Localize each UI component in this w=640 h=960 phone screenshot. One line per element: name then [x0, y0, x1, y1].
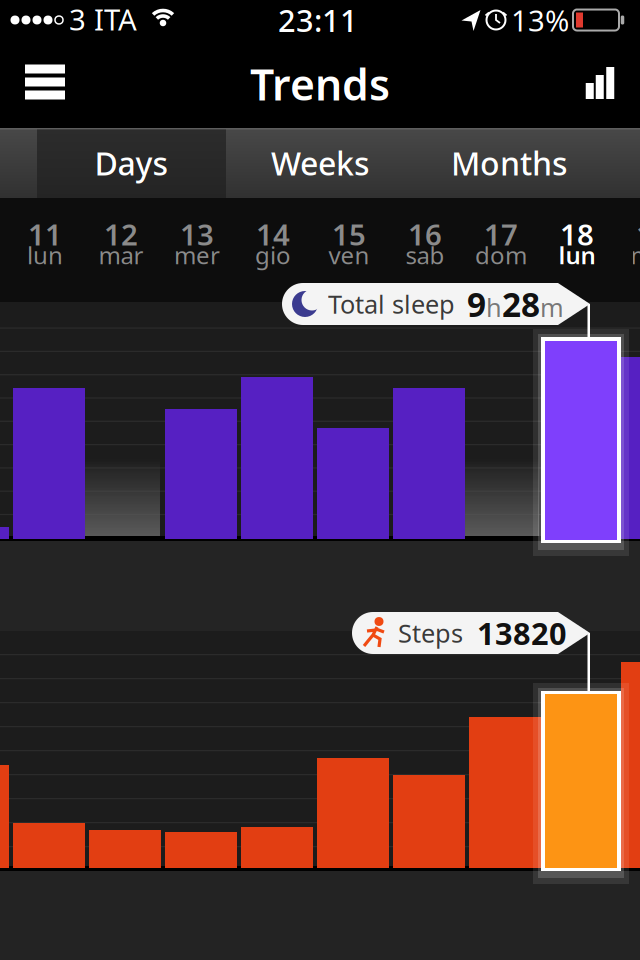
staticText: Total sleep	[328, 287, 455, 321]
staticText: Months	[451, 142, 568, 184]
staticText: h	[486, 290, 502, 324]
button[interactable]: Days	[37, 128, 226, 198]
staticText: 28	[502, 282, 540, 326]
staticText: 12	[104, 214, 138, 253]
button[interactable]: Menu	[25, 64, 65, 99]
staticText: mar	[630, 239, 640, 271]
staticText: Days	[94, 142, 168, 184]
staticText: 18	[560, 214, 594, 253]
button[interactable]: 11	[7, 208, 83, 278]
staticText: 23:11	[278, 0, 358, 40]
staticText: 13%	[511, 0, 569, 39]
staticText: 16	[408, 214, 442, 253]
staticText: m	[540, 290, 564, 324]
button[interactable]: 16	[387, 208, 463, 278]
staticText: 3 ITA	[69, 0, 137, 38]
button[interactable]: 17	[463, 208, 539, 278]
staticText: dom	[475, 239, 527, 271]
staticText: 13	[180, 214, 214, 253]
staticText: 9	[467, 282, 486, 326]
staticText: mar	[98, 239, 143, 271]
button[interactable]: 18	[539, 208, 615, 278]
staticText: sab	[405, 239, 444, 271]
staticText: 17	[484, 214, 518, 253]
staticText: ven	[328, 239, 369, 271]
staticText: lun	[558, 239, 595, 271]
button[interactable]: 12	[83, 208, 159, 278]
staticText: gio	[255, 239, 291, 271]
staticText: Trends	[250, 56, 390, 112]
staticText: 15	[332, 214, 366, 253]
staticText: 11	[28, 214, 62, 253]
button[interactable]: Weeks	[226, 128, 415, 198]
button[interactable]: Charts	[586, 67, 614, 99]
button[interactable]: 15	[311, 208, 387, 278]
staticText: 13820	[477, 613, 567, 653]
button[interactable]: 19	[615, 208, 640, 278]
staticText: 14	[256, 214, 290, 253]
staticText: lun	[27, 239, 63, 271]
staticText: 19	[636, 214, 640, 253]
button[interactable]: 14	[235, 208, 311, 278]
staticText: Steps	[398, 616, 463, 650]
button[interactable]: Months	[415, 128, 604, 198]
staticText: Weeks	[271, 142, 370, 184]
staticText: mer	[174, 239, 220, 271]
button[interactable]: 13	[159, 208, 235, 278]
